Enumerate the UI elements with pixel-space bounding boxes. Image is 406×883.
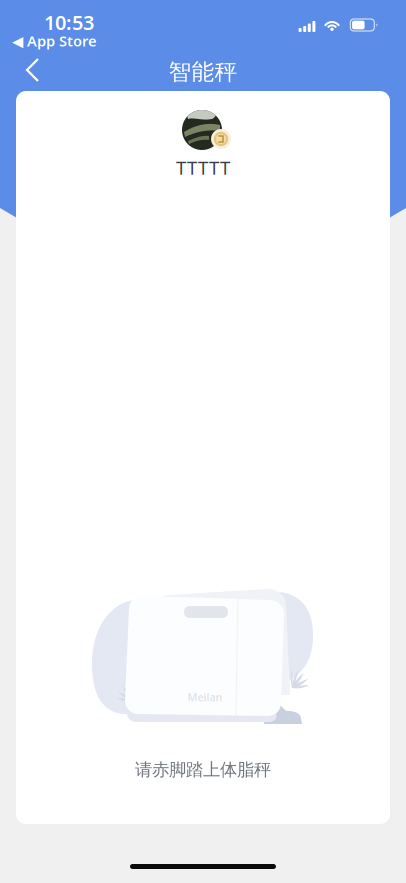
staticText: 10:53	[44, 9, 94, 36]
staticText: Meilan	[187, 690, 222, 704]
staticText: 请赤脚踏上体脂秤	[135, 759, 271, 780]
staticText: 智能秤	[168, 58, 237, 86]
staticText: ◀ App Store	[12, 31, 97, 50]
button[interactable]: Back	[8, 50, 56, 90]
staticText: TTTTT	[176, 155, 230, 180]
